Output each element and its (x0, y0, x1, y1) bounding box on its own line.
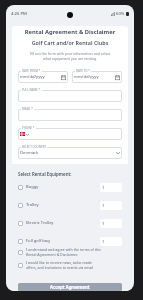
staticText: 4:26 PM (11, 11, 27, 17)
staticText: 1 (102, 239, 105, 245)
staticText: 60% (116, 11, 125, 17)
staticText: Accept Agreement (50, 284, 90, 290)
staticText: mm/dd/yyyy (20, 74, 45, 80)
other: Open dropdown (26, 133, 29, 136)
button[interactable]: Electric Trolley (18, 214, 122, 232)
other: Country code Denmark (20, 132, 25, 136)
button[interactable]: Trolley (18, 196, 122, 214)
staticText: Select Rental Equipment: (18, 171, 72, 177)
staticText: Full golf bag (26, 238, 100, 244)
other: Pick date (61, 75, 66, 80)
staticText: mm/dd/yyyy (74, 74, 99, 80)
button[interactable] (18, 90, 122, 102)
button[interactable]: mm/dd/yyyy (72, 71, 122, 83)
staticText: DATE FROM * (22, 69, 41, 73)
button[interactable]: Accept Agreement (18, 283, 122, 291)
staticText: Electric Trolley (26, 220, 100, 226)
button[interactable]: I understand and agree with the terms of… (18, 247, 122, 257)
button[interactable]: Country code Denmark (18, 128, 122, 140)
staticText: Golf Cart and/or Rental Clubs (18, 39, 122, 46)
staticText: 1 (102, 185, 105, 191)
button[interactable] (18, 109, 122, 121)
staticText: FULL NAME * (22, 88, 41, 92)
other: Open dropdown (116, 151, 120, 155)
staticText: 1 (102, 221, 105, 227)
button[interactable]: Denmark (18, 147, 122, 159)
staticText: Buggy (26, 184, 100, 190)
button[interactable]: Buggy (18, 178, 122, 196)
staticText: Trolley (26, 202, 100, 208)
staticText: Denmark (20, 150, 39, 156)
staticText: Rental Agreement & Disclaimer (18, 28, 122, 36)
button[interactable]: I would like to receive news, tailor-mad… (18, 260, 122, 270)
button[interactable]: Full golf bag (18, 232, 122, 250)
staticText: I understand and agree with the terms of… (26, 247, 122, 257)
staticText: DATE TO * (76, 69, 90, 73)
staticText: EMAIL * (22, 107, 33, 111)
staticText: SELECT COUNTRY (22, 145, 46, 149)
staticText: 1 (102, 203, 105, 209)
staticText: Fill out the form with your information … (18, 51, 122, 61)
other: Pick date (115, 75, 120, 80)
button[interactable]: mm/dd/yyyy (18, 71, 68, 83)
staticText: I would like to receive news, tailor-mad… (26, 260, 122, 270)
staticText: PHONE * (22, 126, 35, 130)
